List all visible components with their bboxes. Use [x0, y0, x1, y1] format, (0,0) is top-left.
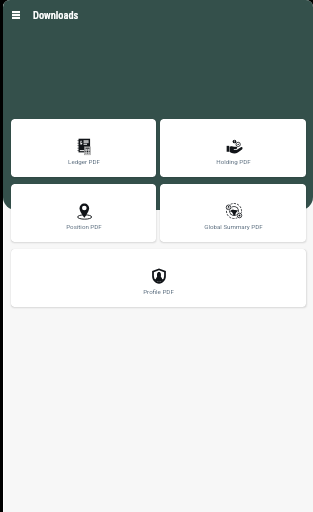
- button[interactable]: Global Summary PDF: [160, 184, 306, 242]
- staticText: Global Summary PDF: [204, 223, 263, 230]
- staticText: Position PDF: [66, 223, 102, 230]
- button[interactable]: Ledger PDF: [11, 119, 156, 177]
- staticText: Holding PDF: [216, 158, 251, 165]
- staticText: Profile PDF: [143, 288, 174, 295]
- button[interactable]: Position PDF: [11, 184, 156, 242]
- button[interactable]: Profile PDF: [11, 249, 306, 307]
- staticText: Ledger PDF: [68, 158, 100, 165]
- button[interactable]: Open navigation menu: [6, 3, 25, 27]
- button[interactable]: Holding PDF: [160, 119, 306, 177]
- staticText: Downloads: [33, 9, 79, 21]
